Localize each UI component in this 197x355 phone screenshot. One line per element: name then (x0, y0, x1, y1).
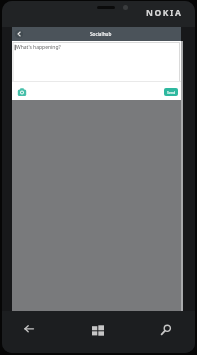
button[interactable]: Send (164, 88, 178, 96)
staticText: NOKIA (146, 7, 183, 19)
staticText: What's happening? (16, 44, 61, 51)
button[interactable] (20, 320, 38, 336)
button[interactable] (89, 320, 107, 336)
button[interactable] (158, 320, 176, 336)
staticText: Socialhub (90, 31, 112, 37)
staticText: Send (167, 90, 176, 95)
button[interactable] (15, 30, 23, 38)
